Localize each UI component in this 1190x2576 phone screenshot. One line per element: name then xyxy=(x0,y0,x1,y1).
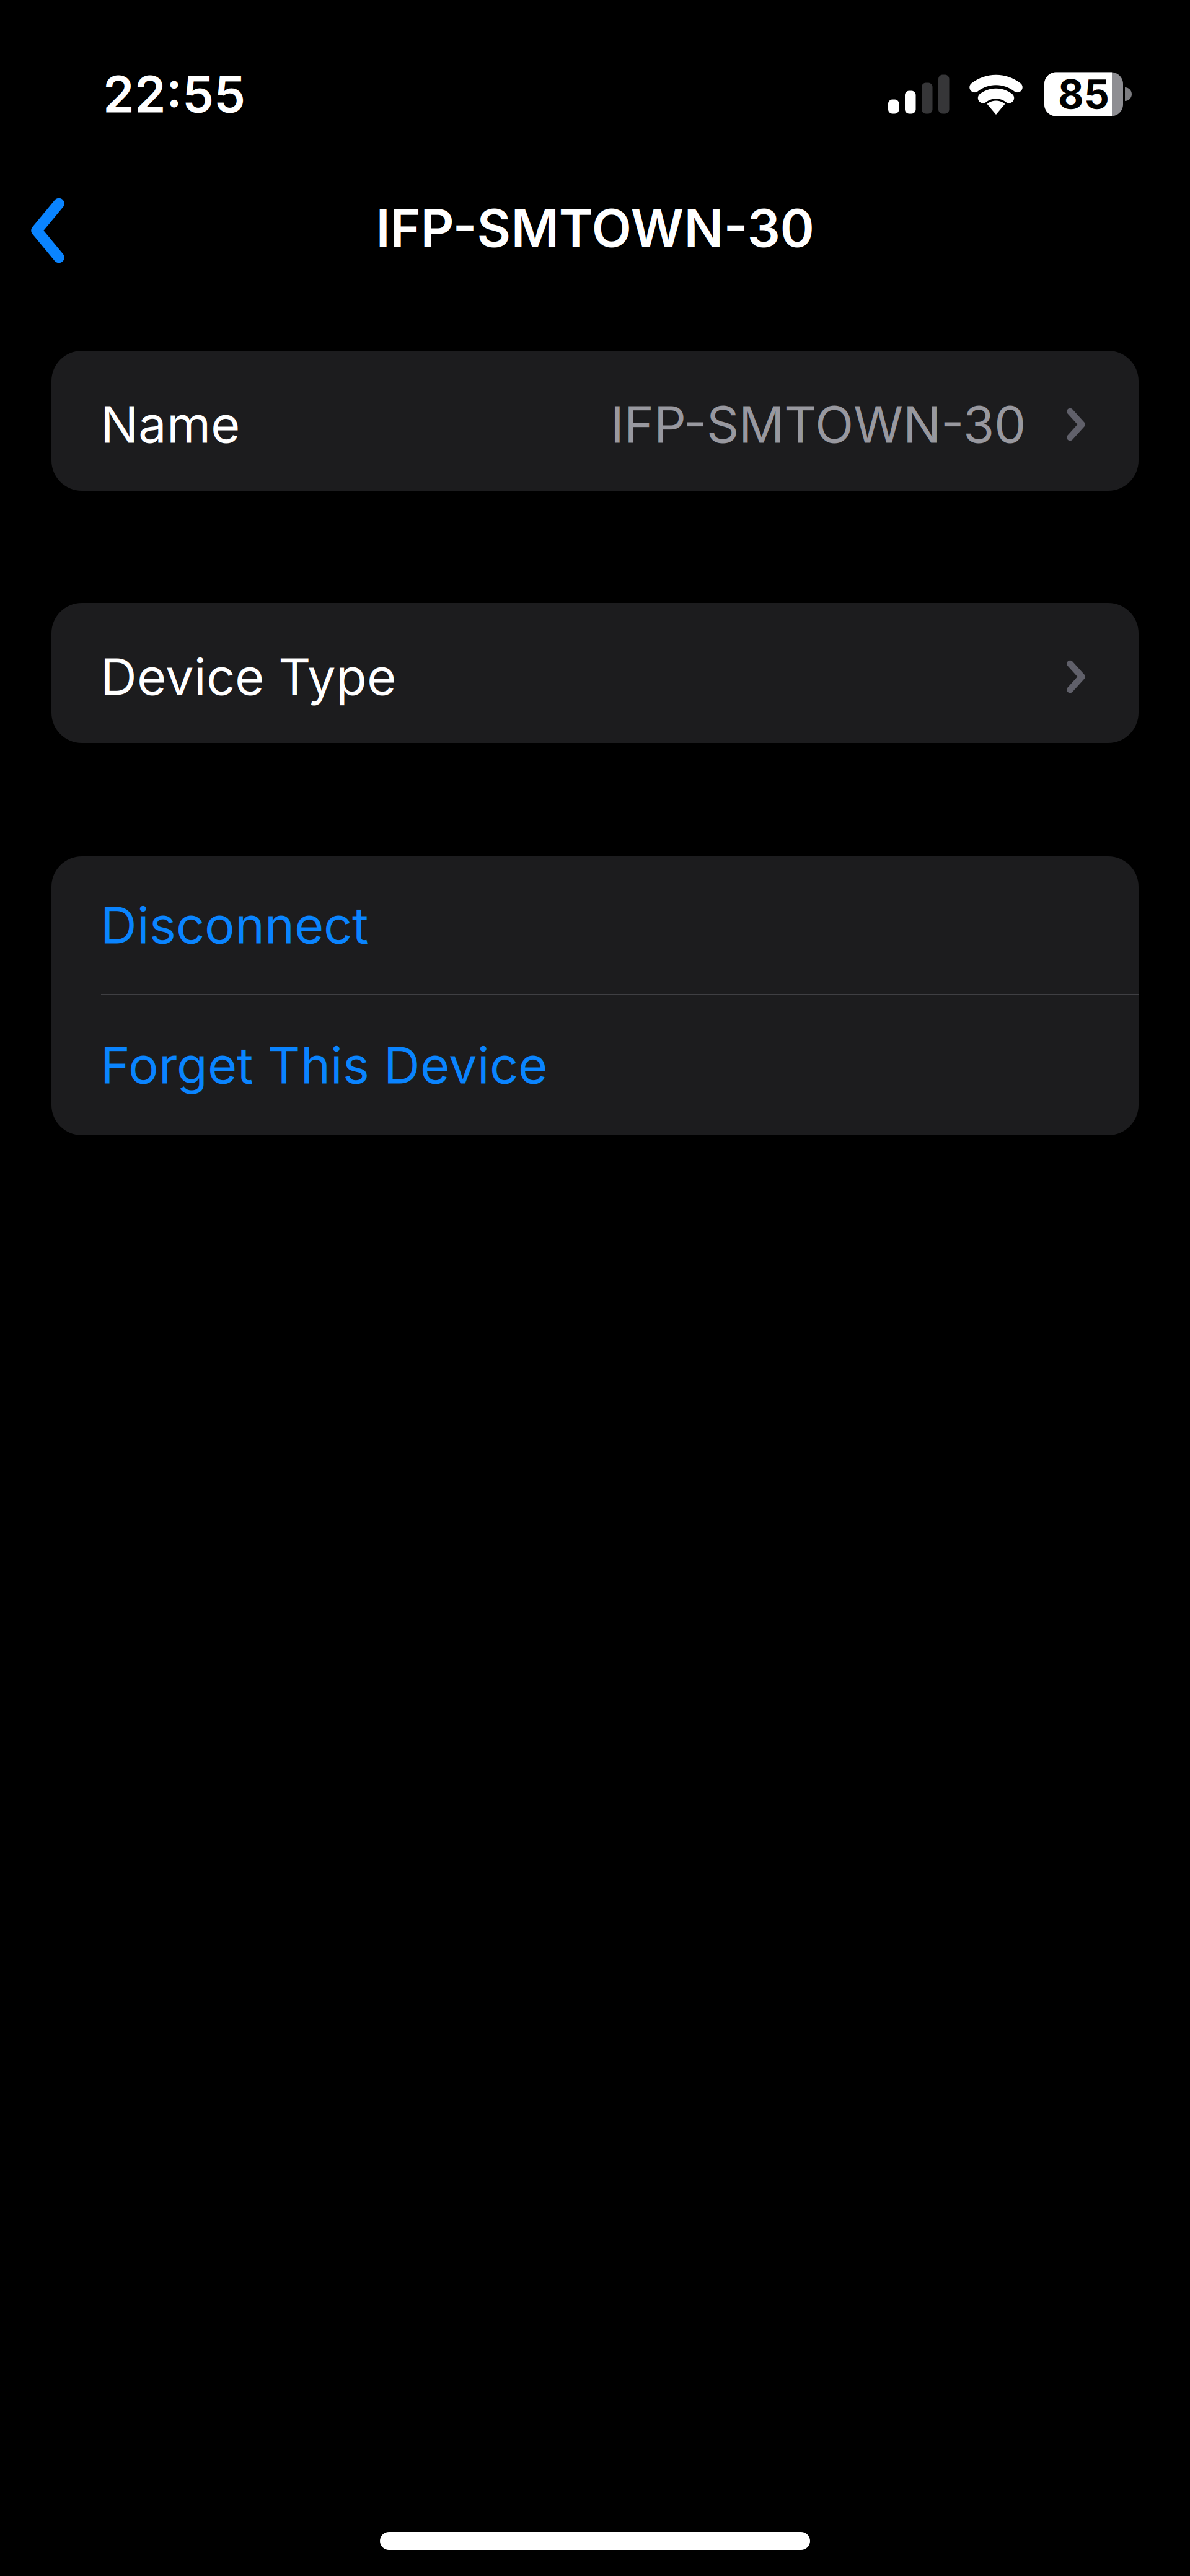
staticText: IFP-SMTOWN-30 xyxy=(610,394,1026,455)
staticText: Name xyxy=(100,394,240,455)
staticText: Device Type xyxy=(100,646,396,707)
button[interactable]: Back xyxy=(30,196,65,261)
staticText: 85 xyxy=(1058,70,1109,118)
staticText: Disconnect xyxy=(100,895,369,956)
button[interactable]: Forget This Device xyxy=(51,995,1139,1135)
button[interactable]: Disconnect xyxy=(51,856,1139,994)
staticText: IFP-SMTOWN-30 xyxy=(376,197,814,260)
staticText: Forget This Device xyxy=(100,1035,547,1096)
button[interactable]: Device Type xyxy=(51,603,1139,743)
staticText: 22:55 xyxy=(103,64,245,125)
button[interactable]: Name xyxy=(51,351,1139,491)
